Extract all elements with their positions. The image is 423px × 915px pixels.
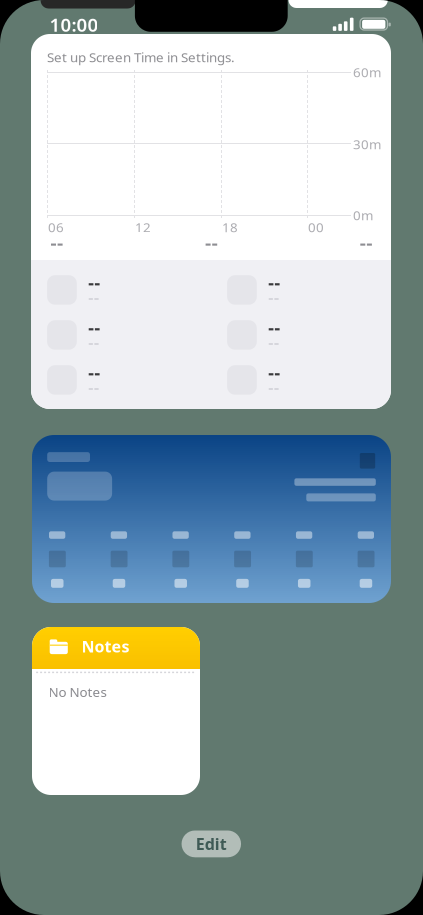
staticText: 10:00: [49, 12, 98, 37]
staticText: 18: [222, 218, 238, 236]
staticText: 06: [48, 218, 64, 236]
staticText: 00: [308, 218, 324, 236]
button[interactable]: Edit: [182, 830, 241, 857]
staticText: Notes: [82, 636, 130, 657]
staticText: Set up Screen Time in Settings.: [47, 48, 235, 66]
staticText: No Notes: [48, 683, 106, 701]
staticText: 0m: [353, 206, 373, 224]
staticText: Edit: [196, 833, 227, 854]
staticText: 30m: [353, 135, 381, 153]
staticText: 12: [135, 218, 151, 236]
staticText: 60m: [353, 63, 381, 81]
